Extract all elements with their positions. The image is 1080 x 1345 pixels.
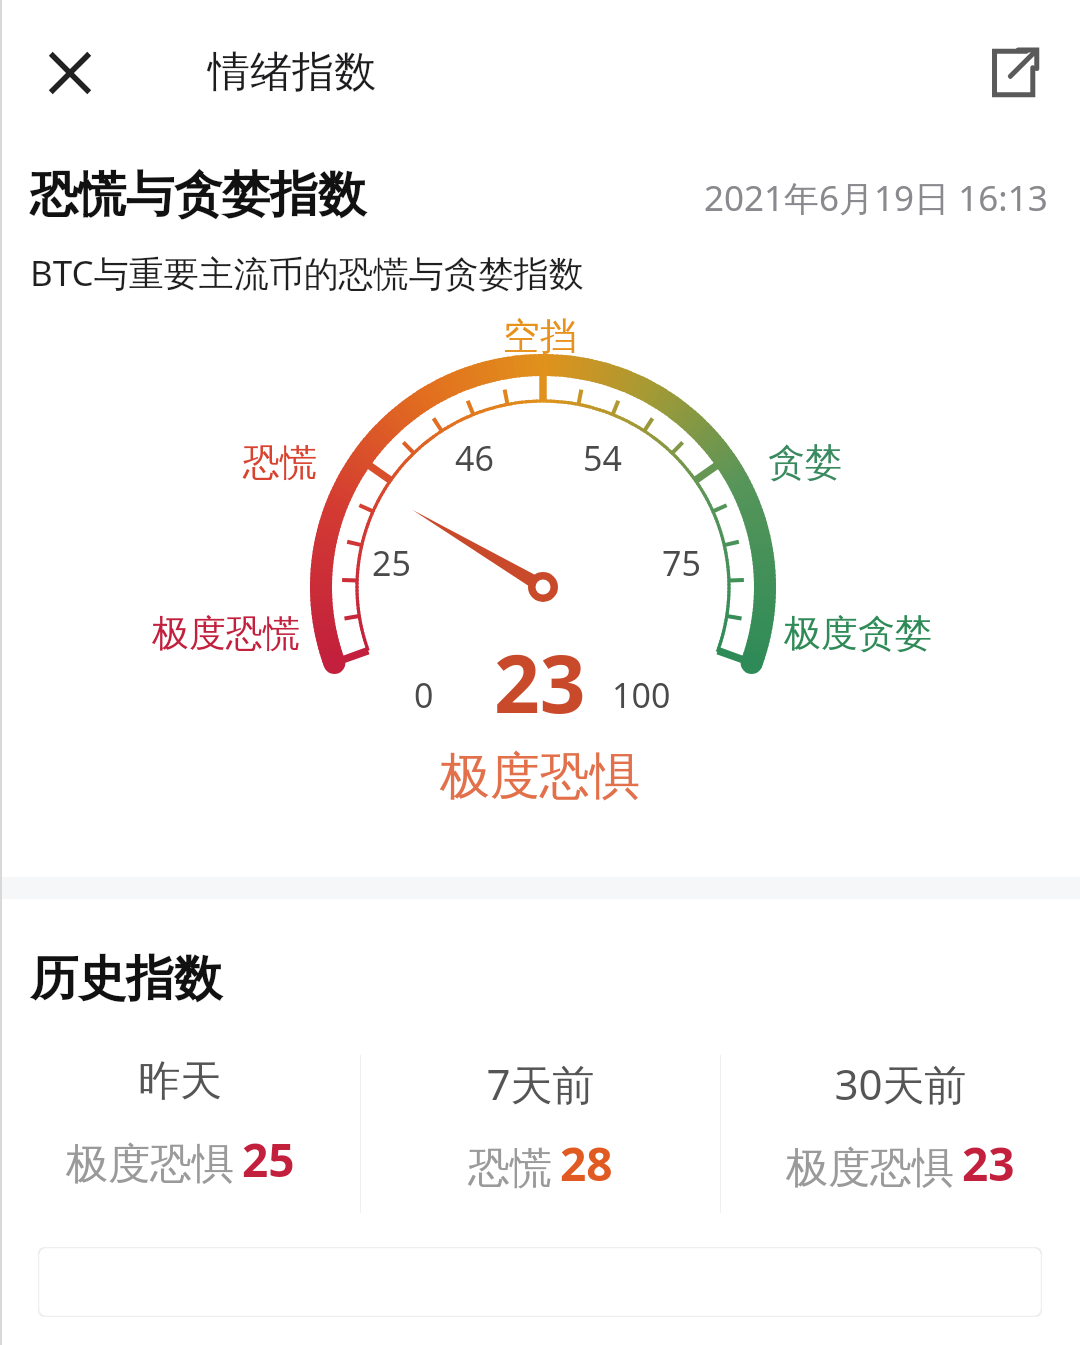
staticText: 25 — [372, 540, 411, 586]
button[interactable] — [38, 1247, 1042, 1317]
staticText: 昨天 — [138, 1055, 222, 1108]
staticText: 恐慌与贪婪指数 — [30, 165, 366, 225]
staticText: 2021年6月19日 16:13 — [704, 174, 1048, 222]
staticText: 极度贪婪 — [784, 610, 932, 657]
button[interactable]: 7天前 — [361, 1055, 720, 1195]
staticText: 恐慌 — [468, 1142, 552, 1195]
staticText: 空挡 — [503, 313, 577, 360]
staticText: 54 — [583, 435, 622, 481]
staticText: 情绪指数 — [208, 46, 376, 99]
staticText: 7天前 — [486, 1055, 595, 1112]
staticText: 30天前 — [834, 1055, 967, 1112]
button[interactable]: 30天前 — [721, 1055, 1080, 1195]
staticText: 46 — [455, 435, 494, 481]
button[interactable]: Share — [980, 40, 1046, 106]
staticText: 极度恐慌 — [152, 610, 300, 657]
staticText: BTC与重要主流币的恐慌与贪婪指数 — [30, 249, 584, 297]
staticText: 极度恐惧 — [66, 1138, 234, 1191]
staticText: 恐慌 — [243, 439, 317, 486]
button[interactable]: Close — [34, 37, 106, 109]
staticText: 0 — [414, 672, 434, 718]
staticText: 100 — [612, 672, 671, 718]
staticText: 极度恐惧 — [786, 1142, 954, 1195]
staticText: 23 — [494, 627, 586, 736]
staticText: 极度恐惧 — [440, 745, 640, 808]
staticText: 28 — [560, 1132, 613, 1195]
staticText: 贪婪 — [768, 439, 842, 486]
button[interactable]: 昨天 — [0, 1055, 360, 1191]
staticText: 75 — [662, 540, 701, 586]
staticText: 23 — [962, 1132, 1015, 1195]
staticText: 历史指数 — [30, 949, 222, 1009]
staticText: 25 — [242, 1128, 295, 1191]
